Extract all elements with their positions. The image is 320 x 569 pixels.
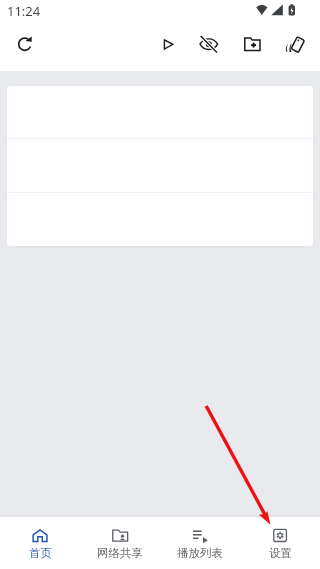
button[interactable]: 首页 [0,517,80,569]
button[interactable]: 播放列表 [160,517,240,569]
button[interactable]: New folder [235,24,269,58]
staticText: 11:24 [7,2,41,20]
button[interactable]: Hide [192,24,226,58]
button[interactable]: 网络共享 [80,517,160,569]
staticText: 播放列表 [177,546,223,560]
button[interactable]: 设置 [240,517,320,569]
staticText: 设置 [269,546,292,560]
button[interactable]: Refresh [8,24,42,58]
staticText: 首页 [29,546,52,560]
staticText: 网络共享 [97,546,143,560]
button[interactable]: Shake [278,24,312,58]
button[interactable]: Play [151,24,185,58]
